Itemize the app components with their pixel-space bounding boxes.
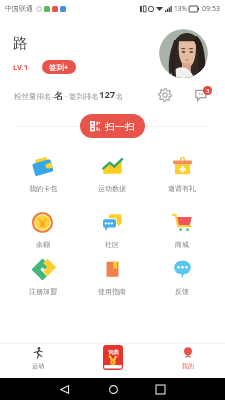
button[interactable]: Messages [194,85,212,103]
staticText: 余额 [36,240,50,249]
staticText: 中国联通 [5,4,33,13]
button[interactable]: 余额 [8,206,77,254]
button[interactable]: 运动数据 [77,150,147,198]
staticText: 词典 [108,349,119,356]
staticText: 扫一扫 [105,120,135,133]
button[interactable]: 运动 [0,344,75,378]
staticText: LV.1 [13,62,28,72]
staticText: 127 [99,88,116,101]
staticText: 粉丝量排名- [14,91,54,101]
button[interactable]: 反馈 [147,253,217,301]
button[interactable]: Dictionary [103,345,123,370]
staticText: 路 [13,34,28,53]
staticText: 社区 [105,240,119,249]
button[interactable]: Back [54,379,74,399]
button[interactable]: Profile photo [159,29,208,78]
staticText: 使用指南 [98,287,126,296]
staticText: 名 [54,90,63,101]
staticText: 13% [174,4,187,13]
staticText: 反馈 [175,287,189,296]
button[interactable]: 扫一扫 [80,114,145,138]
staticText: 签到+ [49,62,69,72]
staticText: 邀请有礼 [168,184,196,193]
button[interactable]: 我的卡包 [8,150,77,198]
button[interactable]: Recents [150,379,170,399]
staticText: 3 [206,87,210,95]
button[interactable]: 邀请有礼 [147,150,217,198]
staticText: 运动 [32,362,44,370]
button[interactable]: Home [103,379,123,399]
button[interactable]: 社区 [77,206,147,254]
button[interactable]: 商城 [147,206,217,254]
staticText: 我的卡包 [29,184,57,193]
staticText: · 签到排名 [63,91,99,101]
button[interactable]: Settings [157,87,172,102]
staticText: 注册加盟 [29,287,57,296]
button[interactable]: 使用指南 [77,253,147,301]
staticText: 商城 [175,240,189,249]
staticText: 名 [116,92,124,101]
button[interactable]: 注册加盟 [8,253,77,301]
staticText: 运动数据 [98,184,126,193]
staticText: 09:53 [202,4,220,14]
staticText: 我的 [182,362,194,370]
button[interactable]: 我的 [150,344,225,378]
button[interactable]: 签到+ [42,60,76,74]
